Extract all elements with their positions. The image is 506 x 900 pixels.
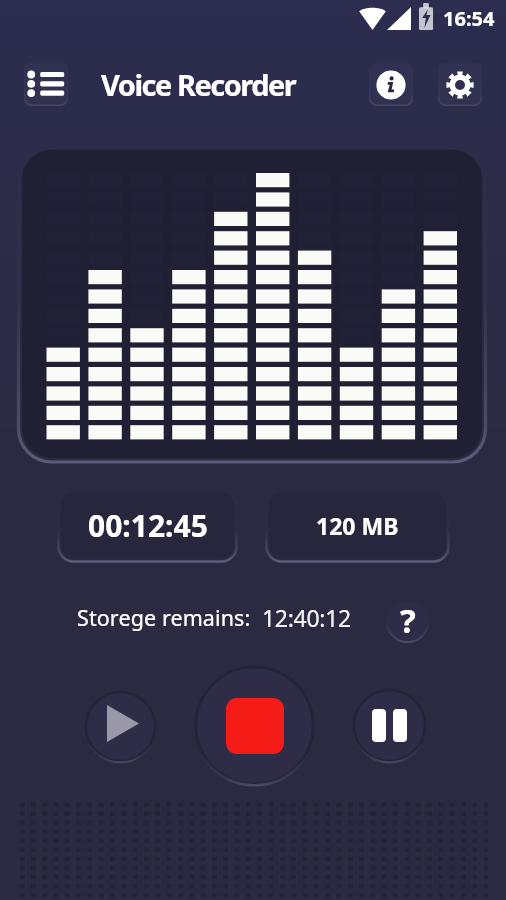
staticText: 12:40:12 [262, 602, 351, 633]
staticText: Storege remains: [77, 603, 251, 632]
button[interactable]: Recordings list [24, 62, 68, 106]
staticText: ? [400, 598, 416, 643]
button[interactable]: Info [369, 63, 413, 106]
button[interactable]: Play [79, 685, 162, 768]
button[interactable]: Help [381, 595, 434, 648]
button[interactable]: Pause [347, 683, 432, 768]
staticText: 16:54 [443, 5, 495, 32]
staticText: Voice Recorder [101, 65, 296, 104]
button[interactable]: 120 MB [263, 486, 452, 566]
staticText: 00:12:45 [88, 505, 208, 546]
button[interactable]: Record [189, 660, 320, 791]
button[interactable]: 00:12:45 [55, 486, 240, 566]
staticText: 120 MB [316, 510, 399, 541]
button[interactable]: Settings [438, 63, 482, 106]
